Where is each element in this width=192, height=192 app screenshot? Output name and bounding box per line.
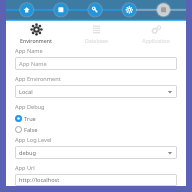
staticText: Application	[142, 37, 170, 44]
other: Expand dropdown	[167, 89, 173, 95]
staticText: Local	[19, 88, 33, 96]
staticText: Environment	[20, 37, 52, 44]
button[interactable]: False	[15, 124, 177, 135]
button[interactable]: Application	[126, 21, 186, 47]
button[interactable]: App Name	[15, 57, 177, 70]
staticText: http://localhost	[19, 176, 60, 184]
staticText: App Name	[15, 47, 43, 55]
staticText: App Environment	[15, 75, 61, 83]
other: Expand dropdown	[167, 150, 173, 156]
staticText: Database	[85, 37, 108, 44]
staticText: App Url	[15, 164, 35, 172]
staticText: App Name	[19, 60, 47, 68]
button[interactable]: debug	[15, 146, 177, 159]
staticText: True	[24, 115, 36, 123]
button[interactable]: http://localhost	[15, 174, 177, 186]
staticText: debug	[19, 149, 36, 157]
staticText: App Log Level	[15, 136, 52, 144]
button[interactable]: Environment	[6, 21, 66, 47]
staticText: False	[24, 126, 38, 134]
staticText: App Debug	[15, 103, 45, 111]
button[interactable]: True	[15, 113, 177, 124]
button[interactable]: Local	[15, 85, 177, 98]
button[interactable]: Database	[66, 21, 126, 47]
